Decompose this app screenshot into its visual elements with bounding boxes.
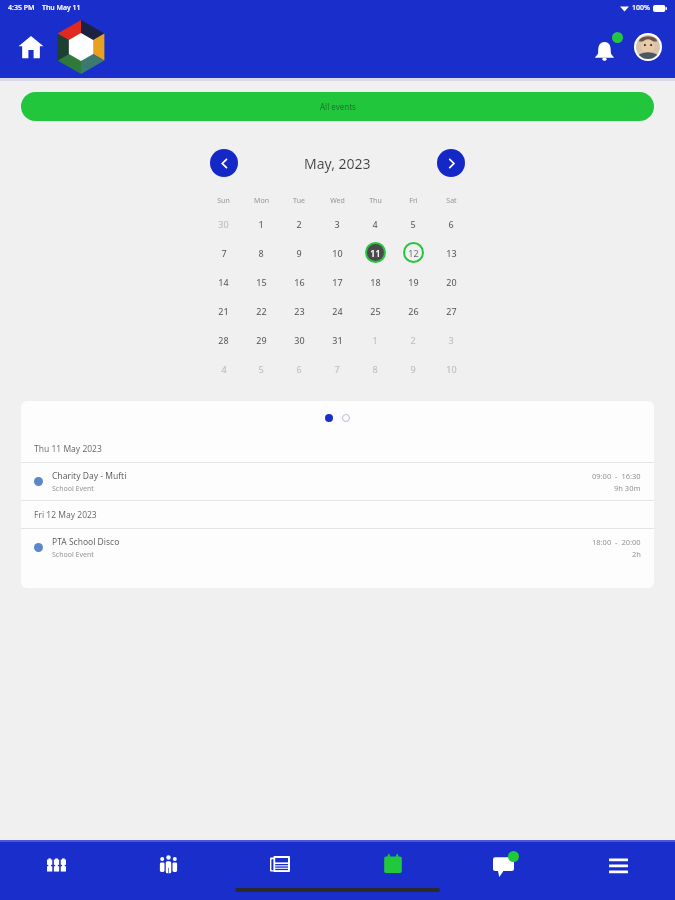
staticText: 18 [370, 276, 381, 288]
button[interactable]: 7 [318, 354, 356, 383]
button[interactable]: Apps [0, 842, 112, 886]
staticText: Tue [293, 196, 305, 206]
staticText: Fri 12 May 2023 [34, 509, 97, 521]
staticText: Thu [369, 196, 382, 206]
staticText: 19 [408, 276, 419, 288]
staticText: Sun [217, 196, 230, 206]
staticText: 9h 30m [614, 483, 641, 493]
button[interactable]: 22 [242, 296, 280, 325]
staticText: Charity Day - Mufti [52, 470, 127, 482]
button[interactable]: Home [10, 26, 52, 68]
staticText: 1 [258, 218, 264, 230]
button[interactable]: News [224, 842, 336, 886]
staticText: 3 [448, 334, 454, 346]
button[interactable]: 11 [356, 238, 394, 267]
button[interactable]: 3 [318, 209, 356, 238]
button[interactable]: 28 [205, 325, 242, 354]
staticText: Thu 11 May 2023 [34, 443, 102, 455]
button[interactable]: 29 [242, 325, 280, 354]
button[interactable]: 1 [356, 325, 394, 354]
button[interactable]: 5 [242, 354, 280, 383]
button[interactable]: 10 [318, 238, 356, 267]
button[interactable]: 6 [280, 354, 318, 383]
button[interactable]: 6 [432, 209, 470, 238]
button[interactable]: Charity Day - Mufti [21, 463, 654, 500]
button[interactable]: Profile [631, 30, 665, 64]
button[interactable]: 1 [242, 209, 280, 238]
button[interactable]: Next month [437, 149, 465, 177]
staticText: PTA School Disco [52, 536, 120, 548]
button[interactable]: 2 [394, 325, 432, 354]
button[interactable]: 31 [318, 325, 356, 354]
button[interactable]: 14 [205, 267, 242, 296]
button[interactable]: People [112, 842, 224, 886]
button[interactable]: 24 [318, 296, 356, 325]
button[interactable]: 4 [205, 354, 242, 383]
button[interactable]: 17 [318, 267, 356, 296]
staticText: 26 [408, 305, 419, 317]
staticText: 25 [370, 305, 381, 317]
button[interactable]: All events [21, 92, 654, 121]
staticText: 20 [446, 276, 457, 288]
button[interactable]: 20 [432, 267, 470, 296]
staticText: 31 [332, 334, 343, 346]
staticText: 16 [294, 276, 305, 288]
button[interactable]: 25 [356, 296, 394, 325]
staticText: All events [320, 101, 356, 112]
button[interactable]: 4 [356, 209, 394, 238]
button[interactable]: 8 [242, 238, 280, 267]
staticText: Thu May 11 [42, 3, 81, 13]
button[interactable]: 26 [394, 296, 432, 325]
staticText: School Event [52, 484, 94, 494]
button[interactable]: 27 [432, 296, 470, 325]
button[interactable]: 30 [280, 325, 318, 354]
staticText: 2h [632, 549, 641, 559]
staticText: Fri [409, 196, 418, 206]
button[interactable]: 21 [205, 296, 242, 325]
button[interactable]: Calendar [336, 842, 449, 886]
staticText: Sat [446, 196, 457, 206]
button[interactable]: 7 [205, 238, 242, 267]
staticText: 3 [334, 218, 340, 230]
staticText: 10 [332, 247, 343, 259]
staticText: 5 [258, 363, 264, 375]
button[interactable]: Page 1 [325, 414, 333, 422]
button[interactable]: 12 [394, 238, 432, 267]
button[interactable]: PTA School Disco [21, 529, 654, 566]
button[interactable]: 2 [280, 209, 318, 238]
staticText: School Event [52, 550, 94, 560]
button[interactable]: 8 [356, 354, 394, 383]
button[interactable]: 18 [356, 267, 394, 296]
button[interactable]: 13 [432, 238, 470, 267]
button[interactable]: 9 [280, 238, 318, 267]
staticText: 30 [218, 218, 229, 230]
button[interactable]: 15 [242, 267, 280, 296]
staticText: 17 [332, 276, 343, 288]
button[interactable]: 23 [280, 296, 318, 325]
button[interactable]: School logo [52, 18, 110, 76]
button[interactable]: Messages [449, 842, 562, 886]
button[interactable]: 30 [205, 209, 242, 238]
button[interactable]: Notifications [589, 27, 629, 67]
button[interactable]: Page 2 [342, 414, 350, 422]
button[interactable]: 10 [432, 354, 470, 383]
staticText: 30 [294, 334, 305, 346]
staticText: 7 [221, 247, 227, 259]
button[interactable]: Menu [562, 842, 675, 886]
button[interactable]: 16 [280, 267, 318, 296]
staticText: 6 [448, 218, 454, 230]
staticText: 5 [410, 218, 416, 230]
button[interactable]: 9 [394, 354, 432, 383]
button[interactable]: 19 [394, 267, 432, 296]
staticText: 8 [372, 363, 378, 375]
staticText: Wed [330, 196, 345, 206]
button[interactable]: 3 [432, 325, 470, 354]
button[interactable]: 5 [394, 209, 432, 238]
staticText: 9 [296, 247, 302, 259]
staticText: 29 [256, 334, 267, 346]
staticText: 8 [258, 247, 264, 259]
staticText: 24 [332, 305, 343, 317]
staticText: 12 [408, 247, 419, 259]
button[interactable]: Previous month [210, 149, 238, 177]
staticText: 28 [218, 334, 229, 346]
